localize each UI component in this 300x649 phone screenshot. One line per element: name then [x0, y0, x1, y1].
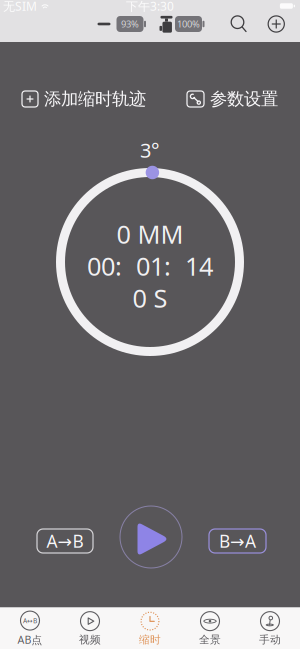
staticText: 93%	[121, 18, 139, 30]
button[interactable]: B→A	[209, 529, 266, 553]
button[interactable]: A→B	[37, 529, 93, 553]
staticText: 0 S	[132, 281, 167, 315]
button[interactable]: 添加缩时轨迹	[22, 88, 146, 110]
staticText: 00: 01: 14	[87, 249, 213, 283]
button[interactable]: 全景	[180, 608, 240, 649]
button[interactable]: 搜索	[228, 13, 249, 35]
staticText: 视频	[79, 633, 101, 646]
button[interactable]: 参数设置	[187, 88, 278, 110]
staticText: 缩时	[139, 633, 161, 646]
button[interactable]: 播放	[120, 506, 182, 568]
button[interactable]: A↔B	[0, 608, 60, 649]
button[interactable]: 缩时	[120, 608, 180, 649]
button[interactable]: 手动	[240, 608, 300, 649]
staticText: 下午3:30	[126, 0, 174, 14]
staticText: 无SIM	[3, 0, 37, 14]
button[interactable]: 添加	[265, 13, 287, 35]
staticText: 3°	[140, 137, 160, 163]
staticText: B→A	[219, 529, 256, 552]
staticText: A→B	[46, 529, 83, 552]
staticText: 手动	[259, 633, 281, 646]
button[interactable]: 收起	[97, 17, 110, 31]
staticText: AB点	[17, 633, 42, 647]
staticText: 全景	[199, 633, 221, 646]
staticText: A↔B	[23, 616, 37, 625]
staticText: 添加缩时轨迹	[44, 88, 146, 110]
staticText: 0 MM	[116, 217, 183, 251]
button[interactable]: 视频	[60, 608, 120, 649]
staticText: 100%	[177, 18, 200, 30]
staticText: 参数设置	[210, 88, 278, 110]
